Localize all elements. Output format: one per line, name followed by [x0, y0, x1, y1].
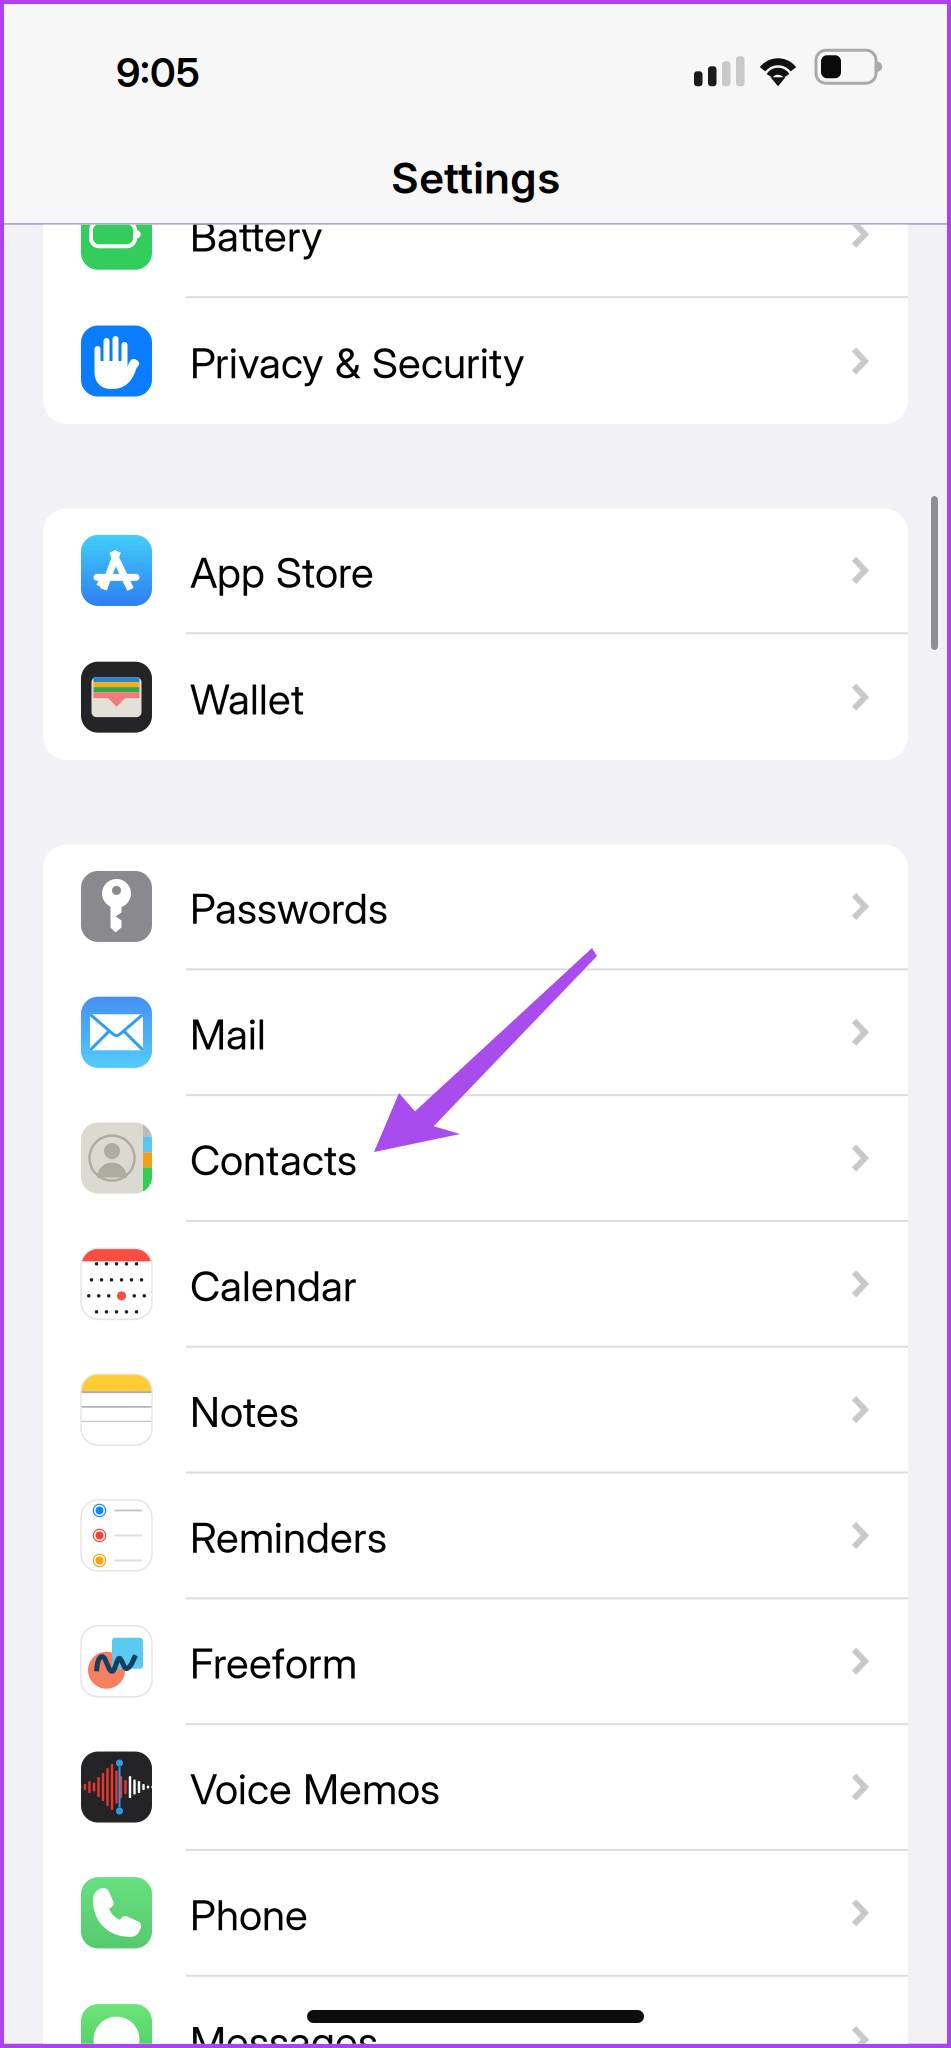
staticText: Contacts	[190, 1135, 357, 1185]
button[interactable]: Calendar	[43, 1222, 908, 1348]
staticText: 9:05	[116, 48, 200, 97]
button[interactable]: App Store	[43, 508, 908, 634]
staticText: Messages	[190, 2016, 378, 2048]
staticText: Calendar	[190, 1260, 357, 1311]
staticText: Voice Memos	[190, 1764, 440, 1814]
button[interactable]: Passwords	[43, 845, 908, 970]
staticText: Wallet	[190, 674, 304, 724]
button[interactable]: Wallet	[43, 634, 908, 760]
staticText: Privacy & Security	[190, 338, 525, 388]
staticText: Passwords	[190, 883, 388, 934]
staticText: Battery	[190, 211, 323, 262]
staticText: Mail	[190, 1009, 266, 1060]
button[interactable]: Notes	[43, 1348, 908, 1474]
staticText: Freeform	[190, 1638, 357, 1689]
button[interactable]: Privacy & Security	[43, 298, 908, 424]
button[interactable]: Reminders	[43, 1474, 908, 1599]
button[interactable]: Freeform	[43, 1599, 908, 1725]
staticText: Phone	[190, 1889, 308, 1940]
button[interactable]: Mail	[43, 970, 908, 1096]
button[interactable]: Voice Memos	[43, 1725, 908, 1851]
staticText: Reminders	[190, 1512, 387, 1563]
button[interactable]: Phone	[43, 1851, 908, 1977]
staticText: Settings	[391, 152, 560, 204]
button[interactable]: Messages	[43, 1977, 908, 2048]
button[interactable]: Battery	[43, 172, 908, 298]
staticText: Notes	[190, 1386, 299, 1437]
button[interactable]: Contacts	[43, 1096, 908, 1222]
staticText: App Store	[190, 547, 374, 598]
